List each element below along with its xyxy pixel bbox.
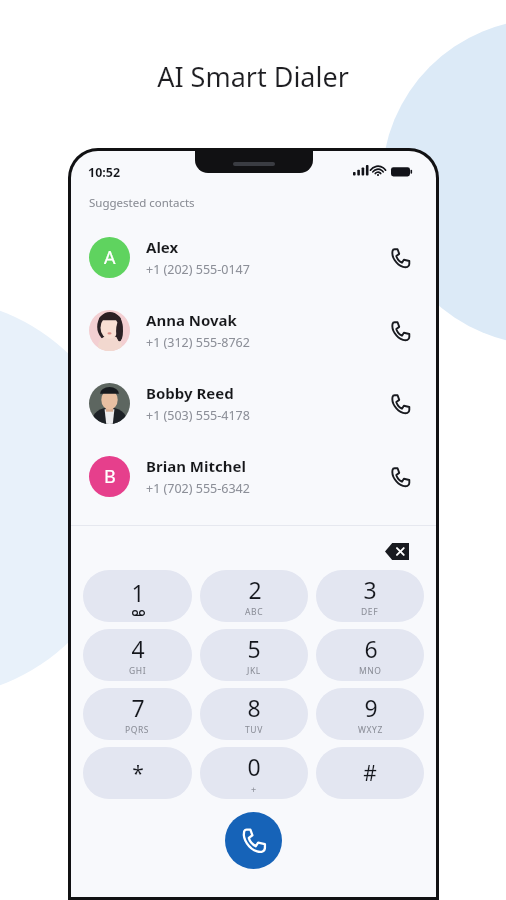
button[interactable]: Call bbox=[225, 812, 282, 869]
button[interactable]: 5 bbox=[200, 629, 308, 681]
button[interactable]: 2 bbox=[200, 570, 308, 622]
staticText: 7 bbox=[131, 692, 145, 723]
staticText: 1 bbox=[131, 577, 145, 608]
staticText: AI Smart Dialer bbox=[0, 58, 506, 95]
staticText: A bbox=[104, 245, 116, 270]
button[interactable]: Bobby Reed bbox=[71, 367, 436, 440]
button[interactable]: 1 bbox=[83, 570, 192, 622]
staticText: 9 bbox=[364, 692, 378, 723]
button[interactable]: Call Anna Novak bbox=[382, 313, 418, 349]
button[interactable]: # bbox=[316, 747, 424, 799]
staticText: 2 bbox=[248, 574, 262, 605]
staticText: * bbox=[132, 759, 144, 788]
button[interactable]: 0 bbox=[200, 747, 308, 799]
staticText: Suggested contacts bbox=[89, 195, 195, 211]
button[interactable]: 8 bbox=[200, 688, 308, 740]
staticText: Alex bbox=[146, 237, 179, 257]
staticText: 10:52 bbox=[88, 164, 121, 181]
staticText: 0 bbox=[247, 751, 261, 782]
button[interactable]: Call Brian Mitchel bbox=[382, 459, 418, 495]
staticText: TUV bbox=[245, 724, 263, 736]
staticText: Anna Novak bbox=[146, 310, 237, 330]
staticText: +1 (702) 555-6342 bbox=[146, 480, 250, 497]
button[interactable]: Call Bobby Reed bbox=[382, 386, 418, 422]
staticText: +1 (312) 555-8762 bbox=[146, 334, 250, 351]
staticText: 5 bbox=[247, 633, 261, 664]
staticText: Brian Mitchel bbox=[146, 456, 246, 476]
staticText: DEF bbox=[361, 606, 379, 618]
staticText: 6 bbox=[364, 633, 378, 664]
staticText: # bbox=[363, 759, 377, 788]
staticText: 8 bbox=[247, 692, 261, 723]
button[interactable]: A bbox=[71, 221, 436, 294]
staticText: 3 bbox=[363, 574, 377, 605]
button[interactable]: 4 bbox=[83, 629, 192, 681]
staticText: WXYZ bbox=[358, 724, 383, 736]
button[interactable]: * bbox=[83, 747, 192, 799]
button[interactable]: 6 bbox=[316, 629, 424, 681]
staticText: PQRS bbox=[125, 724, 150, 736]
button[interactable]: Call Alex bbox=[382, 240, 418, 276]
staticText: +1 (503) 555-4178 bbox=[146, 407, 250, 424]
staticText: ABC bbox=[245, 606, 264, 618]
staticText: B bbox=[104, 464, 116, 489]
staticText: MNO bbox=[359, 665, 382, 677]
staticText: 4 bbox=[131, 633, 145, 664]
staticText: GHI bbox=[129, 665, 147, 677]
staticText: +1 (202) 555-0147 bbox=[146, 261, 250, 278]
button[interactable]: B bbox=[71, 440, 436, 513]
button[interactable]: 9 bbox=[316, 688, 424, 740]
button[interactable]: Backspace bbox=[380, 534, 414, 568]
button[interactable]: 7 bbox=[83, 688, 192, 740]
staticText: JKL bbox=[247, 665, 261, 677]
staticText: Bobby Reed bbox=[146, 383, 234, 403]
staticText: + bbox=[251, 783, 257, 795]
button[interactable]: 3 bbox=[316, 570, 424, 622]
button[interactable]: Anna Novak bbox=[71, 294, 436, 367]
